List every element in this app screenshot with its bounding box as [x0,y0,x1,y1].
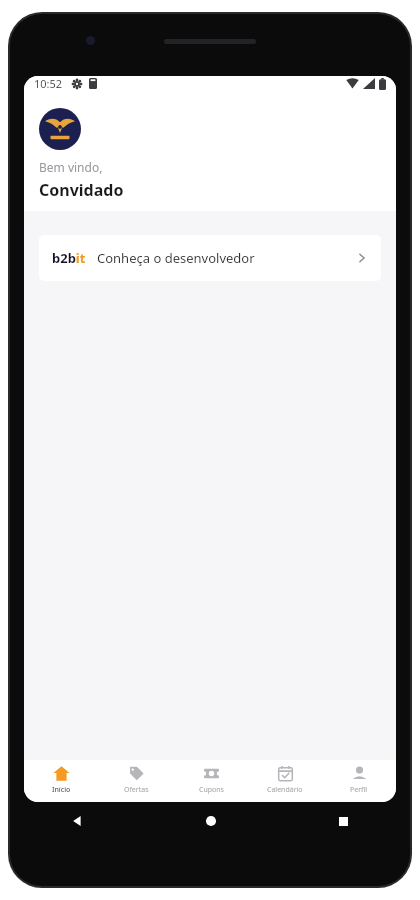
staticText: Convidado [39,179,124,201]
button[interactable]: Recents [277,808,410,834]
button[interactable]: Perfil [322,760,396,802]
button[interactable]: Calendário [248,760,322,802]
staticText: Calendário [267,785,303,795]
staticText: Perfil [350,785,368,795]
staticText: b2bit [52,249,86,267]
button[interactable]: b2bit [39,235,381,281]
staticText: Bem vindo, [39,159,103,175]
button[interactable]: Início [24,760,99,802]
staticText: Conheça o desenvolvedor [97,249,255,267]
button[interactable]: Cupons [174,760,248,802]
staticText: Cupons [199,785,224,795]
staticText: Início [52,785,71,795]
button[interactable]: Ofertas [99,760,174,802]
button[interactable]: Home [144,808,277,834]
button[interactable]: Back [10,808,144,834]
staticText: Ofertas [124,785,149,795]
staticText: 10:52 [34,76,63,91]
